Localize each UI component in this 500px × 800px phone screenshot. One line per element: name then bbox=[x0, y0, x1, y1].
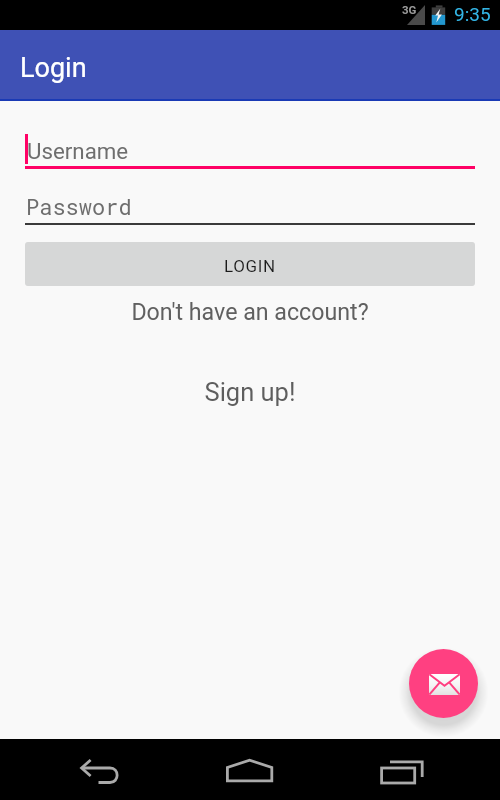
staticText: Username bbox=[27, 138, 129, 164]
button[interactable]: Sign up! bbox=[0, 375, 500, 409]
button[interactable]: Don't have an account? bbox=[0, 296, 500, 326]
button[interactable]: LOGIN bbox=[25, 242, 475, 286]
staticText: 9:35 bbox=[454, 3, 491, 25]
button[interactable]: Recent apps bbox=[360, 739, 440, 800]
staticText: Login bbox=[20, 52, 87, 84]
staticText: Password bbox=[26, 192, 132, 221]
staticText: Sign up! bbox=[204, 377, 296, 407]
staticText: Don't have an account? bbox=[131, 298, 369, 325]
button[interactable]: Compose message bbox=[409, 649, 478, 718]
button[interactable]: Back bbox=[60, 739, 140, 800]
button[interactable]: Home bbox=[210, 739, 290, 800]
staticText: LOGIN bbox=[224, 256, 276, 276]
staticText: 3G bbox=[402, 3, 417, 16]
